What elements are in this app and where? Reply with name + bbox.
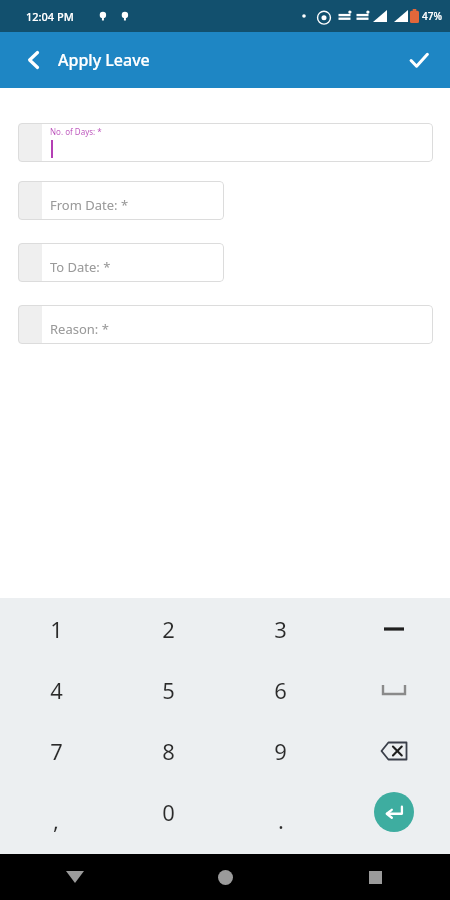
staticText: Reason: * (50, 320, 109, 338)
staticText: To Date: * (50, 258, 111, 276)
button[interactable]: Backspace (337, 720, 450, 781)
staticText: 0 (162, 797, 175, 827)
staticText: 4 (50, 675, 63, 705)
button[interactable]: Space (337, 659, 450, 720)
staticText: 6 (274, 675, 287, 705)
staticText: , (53, 805, 59, 835)
button[interactable]: 3 (224, 598, 337, 659)
staticText: 5 (162, 675, 175, 705)
button[interactable]: 0 (112, 781, 224, 842)
staticText: 12:04 PM (26, 9, 74, 24)
button[interactable]: 5 (112, 659, 224, 720)
button[interactable]: 4 (0, 659, 112, 720)
button[interactable]: Enter (337, 781, 450, 842)
button[interactable]: . (224, 781, 337, 842)
button[interactable]: Reason: * (18, 305, 433, 344)
staticText: No. of Days: * (50, 126, 102, 137)
button[interactable]: From Date: * (18, 181, 224, 220)
button[interactable]: Home (150, 854, 300, 900)
button[interactable]: Hide keyboard (0, 854, 150, 900)
button[interactable]: No. of Days: * (18, 123, 433, 162)
button[interactable]: 8 (112, 720, 224, 781)
button[interactable]: Recents (300, 854, 450, 900)
staticText: 8 (162, 736, 175, 766)
button[interactable]: 1 (0, 598, 112, 659)
staticText: 47% (422, 9, 442, 23)
button[interactable]: Back (14, 40, 54, 80)
staticText: From Date: * (50, 196, 129, 214)
staticText: 3 (274, 614, 287, 644)
button[interactable]: 9 (224, 720, 337, 781)
button[interactable]: 2 (112, 598, 224, 659)
button[interactable]: , (0, 781, 112, 842)
staticText: 2 (162, 614, 175, 644)
button[interactable]: Minus (337, 598, 450, 659)
staticText: Apply Leave (58, 49, 150, 71)
staticText: 1 (50, 614, 63, 644)
staticText: 7 (50, 736, 63, 766)
button[interactable]: Submit (398, 39, 440, 81)
staticText: . (278, 805, 284, 835)
button[interactable]: 7 (0, 720, 112, 781)
staticText: 9 (274, 736, 287, 766)
button[interactable]: To Date: * (18, 243, 224, 282)
button[interactable]: 6 (224, 659, 337, 720)
